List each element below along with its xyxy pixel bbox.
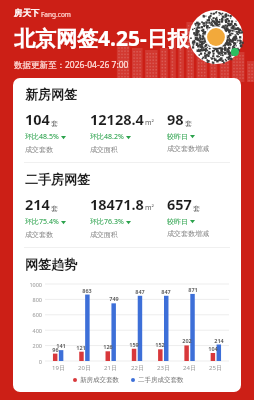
staticText: 成交套数 [25,230,53,239]
button[interactable]: 新房成交套数 [73,376,119,384]
staticText: 657 [167,194,192,214]
staticText: 200 [32,342,42,349]
staticText: 847 [161,288,171,295]
staticText: 800 [32,296,42,303]
staticText: 871 [188,286,198,293]
staticText: 863 [82,287,92,294]
staticText: 二手房网签 [25,171,90,187]
staticText: 较昨日 [167,217,188,226]
button[interactable]: 12128.4 [90,109,167,154]
staticText: 环比48.5% [25,132,59,142]
staticText: 新房成交套数 [80,376,119,384]
staticText: 12128.4 [90,109,144,129]
staticText: 22日 [131,364,144,372]
staticText: 成交套数 [25,145,53,154]
staticText: 24日 [183,364,196,372]
staticText: 网签趋势 [25,256,77,272]
staticText: 二手房成交套数 [138,376,184,384]
staticText: 400 [32,327,42,334]
staticText: 104 [25,109,50,129]
staticText: 18471.8 [90,194,144,214]
staticText: 0 [38,358,42,365]
staticText: 北京网签4.25-日报 [14,24,189,53]
button[interactable]: 房天下二维码 [189,10,243,64]
staticText: 1000 [29,281,42,288]
button[interactable]: 18471.8 [90,194,167,239]
staticText: 121 [76,344,86,351]
staticText: 847 [135,288,145,295]
staticText: 600 [32,311,42,318]
staticText: 环比75.4% [25,217,59,227]
button[interactable]: 104 [25,109,90,154]
staticText: 98 [167,109,184,129]
staticText: 环比76.3% [90,217,124,227]
staticText: 房天下 [14,8,40,19]
staticText: 成交套数增减 [167,229,209,238]
button[interactable]: 二手房成交套数 [131,376,184,384]
staticText: 749 [109,295,119,302]
staticText: 159 [129,341,139,348]
staticText: 套 [51,204,58,213]
staticText: 19日 [52,364,65,372]
staticText: 96 [52,346,59,353]
staticText: 21日 [104,364,117,372]
staticText: 202 [182,337,192,344]
staticText: 141 [56,342,66,349]
staticText: 152 [155,341,165,348]
staticText: 套 [193,204,200,213]
staticText: 新房网签 [25,86,77,102]
button[interactable]: 214 [25,194,90,239]
staticText: 成交套数增减 [167,144,209,153]
staticText: 23日 [157,364,170,372]
staticText: 环比48.2% [90,132,124,142]
staticText: 214 [25,194,50,214]
staticText: Fang.com [41,10,71,19]
staticText: 25日 [209,364,222,372]
staticText: 套 [51,119,58,128]
staticText: 套 [185,119,192,128]
staticText: 成交面积 [90,145,118,154]
staticText: 数据更新至：2026-04-26 7:00 [14,59,129,71]
staticText: 126 [103,343,113,350]
staticText: 20日 [78,364,91,372]
staticText: 104 [208,345,218,352]
staticText: m² [145,203,154,213]
staticText: 成交面积 [90,230,118,239]
button[interactable]: 98 [167,109,231,153]
staticText: 较昨日 [167,132,188,141]
staticText: 214 [214,337,224,344]
button[interactable]: 657 [167,194,231,238]
staticText: m² [145,118,154,128]
